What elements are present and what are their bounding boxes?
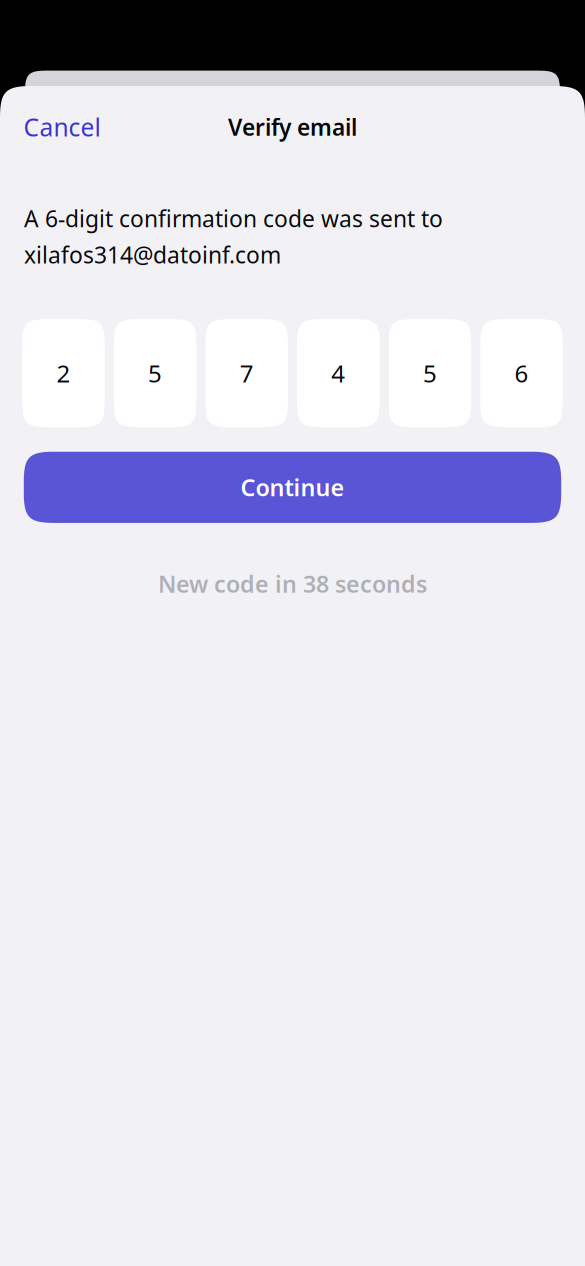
staticText: xilafos314@datoinf.com — [24, 239, 281, 270]
button[interactable]: New code in 38 seconds — [0, 568, 585, 599]
button[interactable]: 2 — [22, 319, 105, 427]
button[interactable]: 6 — [480, 319, 563, 427]
button[interactable]: 5 — [389, 319, 471, 427]
staticText: Verify email — [228, 112, 357, 142]
staticText: Cancel — [23, 110, 100, 144]
staticText: Continue — [240, 471, 344, 503]
staticText: 7 — [240, 357, 254, 389]
staticText: 5 — [148, 357, 162, 389]
button[interactable]: Cancel — [23, 110, 100, 144]
staticText: 2 — [56, 357, 70, 389]
staticText: New code in 38 seconds — [158, 568, 427, 599]
staticText: 6 — [514, 357, 528, 389]
button[interactable]: Continue — [24, 452, 561, 523]
staticText: A 6-digit confirmation code was sent to — [24, 203, 443, 234]
staticText: 5 — [423, 357, 437, 389]
button[interactable]: 5 — [114, 319, 196, 427]
staticText: 4 — [331, 357, 345, 389]
button[interactable]: 7 — [205, 319, 288, 427]
button[interactable]: 4 — [297, 319, 379, 427]
